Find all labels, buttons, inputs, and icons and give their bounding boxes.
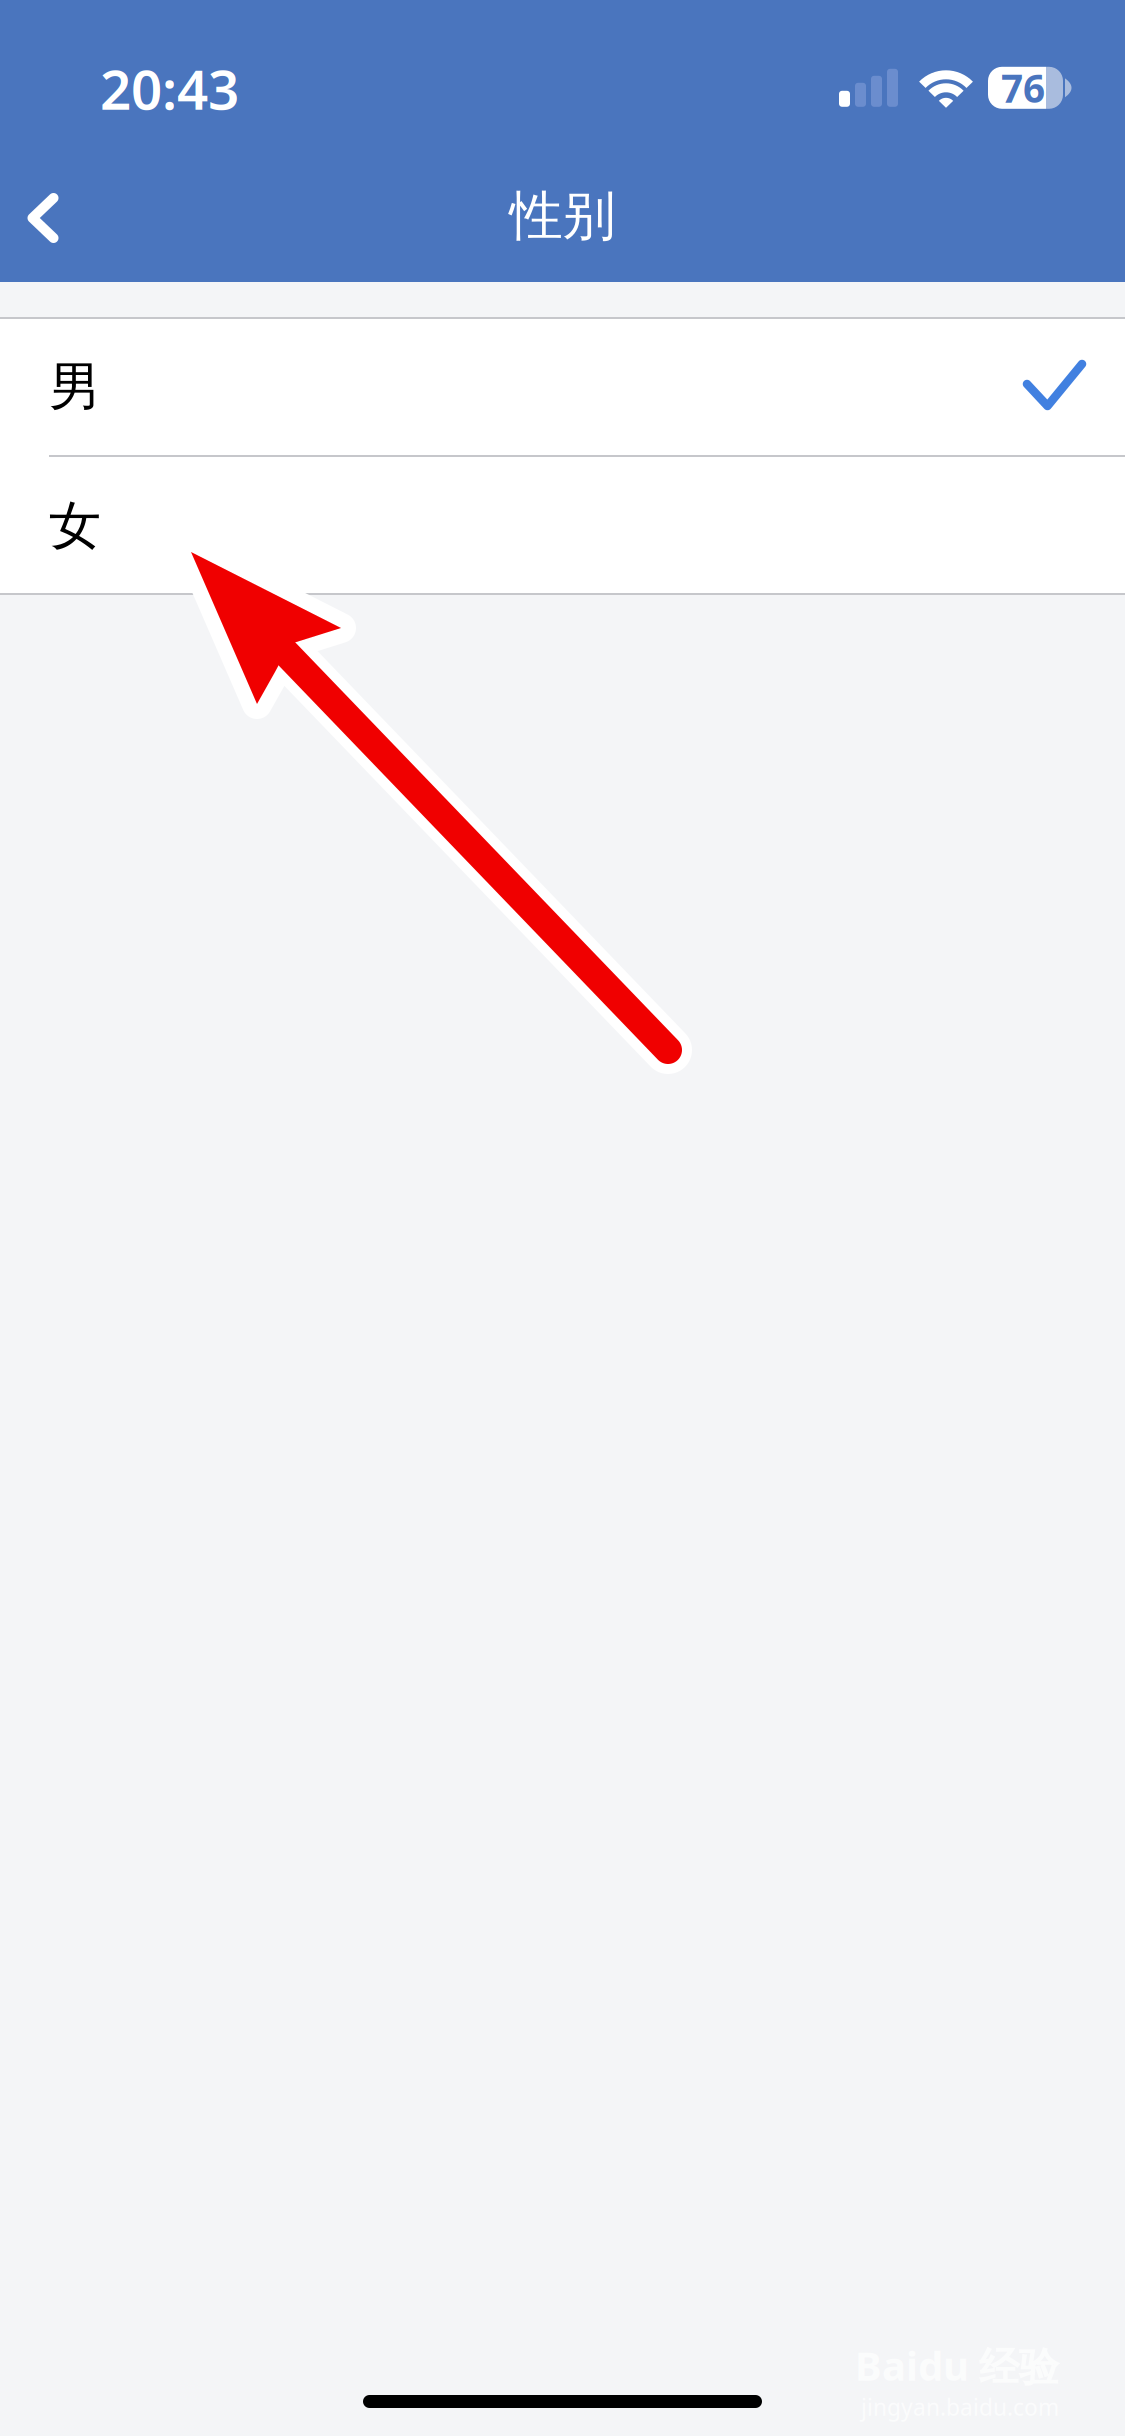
button[interactable]: 男 <box>0 317 1125 457</box>
staticText: 性别 <box>509 183 615 249</box>
button[interactable]: 女 <box>0 457 1125 595</box>
button[interactable]: Back <box>0 149 86 265</box>
staticText: 20:43 <box>100 52 239 125</box>
staticText: 女 <box>49 494 101 558</box>
staticText: Baidu 经验 <box>855 2339 1059 2392</box>
staticText: 男 <box>49 355 101 419</box>
staticText: 76 <box>1001 62 1045 113</box>
